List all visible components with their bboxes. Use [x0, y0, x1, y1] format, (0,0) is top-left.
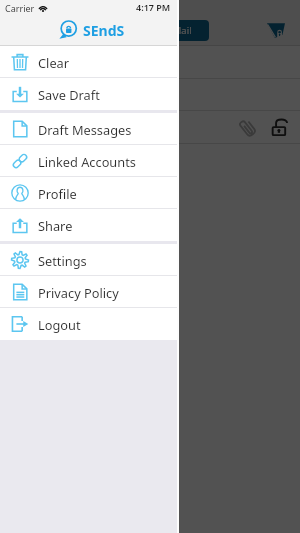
button[interactable]: Send secure message: [264, 20, 288, 40]
button[interactable]: Draft Messages: [0, 113, 179, 145]
staticText: 4:17 PM: [136, 1, 171, 13]
staticText: Logout: [38, 316, 81, 333]
button[interactable]: Settings: [0, 244, 179, 276]
button[interactable]: Share: [0, 209, 179, 241]
staticText: Linked Accounts: [38, 153, 136, 170]
staticText: Carrier: [5, 2, 35, 14]
button[interactable]: Send Mail: [131, 20, 209, 41]
staticText: Privacy Policy: [38, 284, 119, 301]
staticText: Save Draft: [38, 86, 100, 103]
button[interactable]: Clear: [0, 46, 179, 78]
button[interactable]: Linked Accounts: [0, 145, 179, 177]
button[interactable]: [179, 0, 300, 533]
button[interactable]: Logout: [0, 308, 179, 340]
button[interactable]: Save Draft: [0, 78, 179, 110]
staticText: Clear: [38, 54, 70, 71]
staticText: Profile: [38, 185, 77, 202]
staticText: Settings: [38, 252, 87, 269]
staticText: Send Mail: [148, 24, 192, 37]
staticText: Carrier: [5, 2, 35, 14]
staticText: 4:17 PM: [136, 1, 171, 13]
button[interactable]: Attach file: [235, 115, 259, 139]
button[interactable]: Profile: [0, 177, 179, 209]
button[interactable]: Privacy Policy: [0, 276, 179, 308]
staticText: Draft Messages: [38, 121, 132, 138]
staticText: Share: [38, 217, 73, 234]
staticText: SEndS: [83, 21, 125, 40]
button[interactable]: Unlock: [267, 115, 291, 139]
